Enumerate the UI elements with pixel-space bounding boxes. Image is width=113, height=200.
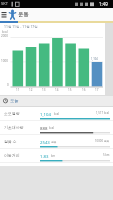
staticText: 1.83 [40,153,49,159]
staticText: kcal [49,126,55,130]
staticText: 11월 11일 - 11월 17일 [4,24,38,29]
staticText: 1000 [1,59,8,63]
staticText: 1,517 kcal [96,111,110,115]
staticText: 걸음 [51,140,57,144]
staticText: 2000 [1,34,8,38]
staticText: 이동거리 [4,153,20,158]
button[interactable] [0,8,8,21]
staticText: 1:49 [99,1,108,7]
staticText: 16 [82,88,86,92]
staticText: 5 km [103,153,110,157]
staticText: 기초대사량 [4,125,24,130]
button[interactable]: 소모열량 [0,107,113,121]
staticText: 17 [95,88,99,92]
staticText: 15 [68,88,72,92]
staticText: 14 [55,88,59,92]
staticText: 오늘 [10,98,19,103]
staticText: 1,104 [40,111,51,117]
button[interactable]: 걸음 수 [0,135,113,149]
button[interactable]: 운동 [8,8,38,21]
staticText: km [51,154,56,158]
staticText: kcal [54,112,60,116]
staticText: 1,104 [91,57,98,61]
staticText: SKT [1,1,8,6]
staticText: 걸음 수 [4,139,17,144]
staticText: 888 [40,125,48,131]
staticText: 13 [42,88,46,92]
button[interactable]: 기초대사량 [0,121,113,135]
staticText: 12 [29,88,33,92]
staticText: kcal [2,30,8,34]
staticText: 0 [7,83,9,87]
staticText: 2543 [40,139,50,145]
button[interactable]: 이동거리 [0,149,113,163]
staticText: 소모열량 [4,111,20,116]
staticText: 10000 걸음 [95,139,110,143]
staticText: 11 [16,88,20,92]
staticText: 운동 [18,11,29,18]
button[interactable]: 11월 11일 - 11월 17일 [0,23,113,96]
